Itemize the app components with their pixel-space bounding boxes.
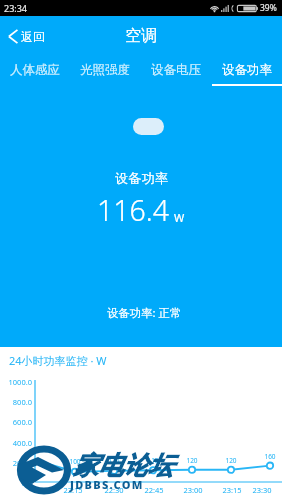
staticText: W: [174, 210, 185, 225]
staticText: 空调: [125, 26, 157, 46]
staticText: 400.0: [0, 438, 32, 448]
staticText: 120: [180, 456, 204, 465]
staticText: 600.0: [0, 417, 32, 427]
button[interactable]: 光照强度: [70, 56, 140, 84]
staticText: 800.0: [0, 397, 32, 407]
staticText: 22:15: [58, 485, 88, 495]
staticText: 24小时功率监控 · W: [9, 353, 107, 368]
staticText: JDBBS.COM: [70, 477, 144, 492]
staticText: 23:15: [217, 485, 247, 495]
staticText: 120: [219, 456, 243, 465]
staticText: 1000.0: [0, 377, 32, 387]
staticText: 光照强度: [80, 62, 130, 78]
staticText: 设备功率: 正常: [107, 305, 182, 321]
staticText: 设备功率: [115, 170, 169, 187]
button[interactable]: 设备功率: [211, 56, 282, 86]
staticText: 110: [102, 456, 126, 465]
staticText: 人体感应: [10, 62, 60, 78]
staticText: 0.0: [0, 478, 32, 488]
button[interactable]: 人体感应: [0, 56, 70, 84]
staticText: 200.0: [0, 458, 32, 468]
button[interactable]: 返回: [0, 23, 53, 50]
staticText: 设备电压: [151, 62, 201, 78]
staticText: 23:00: [178, 485, 208, 495]
staticText: 返回: [21, 29, 45, 44]
staticText: 116.4: [97, 191, 170, 230]
staticText: 100: [63, 457, 87, 466]
staticText: 设备功率: [222, 62, 272, 78]
staticText: 22:45: [139, 485, 169, 495]
staticText: 家电论坛: [73, 450, 173, 481]
staticText: 39%: [260, 2, 277, 14]
staticText: 23:30: [247, 485, 277, 495]
staticText: 23:34: [4, 2, 28, 14]
button[interactable]: 设备电压: [140, 56, 211, 84]
staticText: 22:30: [99, 485, 129, 495]
staticText: 115: [141, 456, 165, 465]
staticText: 160: [258, 452, 282, 461]
